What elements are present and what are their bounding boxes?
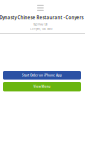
button[interactable]: Menu (34, 2, 46, 13)
staticText: 1823 Hwy 138 (33, 23, 47, 26)
button[interactable]: View Menu (3, 82, 81, 91)
staticText: View Menu (33, 85, 50, 89)
staticText: Conyers, GA 30013 (30, 27, 52, 31)
button[interactable]: Start Order on iPhone App (3, 71, 81, 80)
staticText: Start Order on iPhone App (22, 73, 62, 77)
staticText: Dynasty Chinese Restaurant - Conyers (0, 15, 83, 21)
